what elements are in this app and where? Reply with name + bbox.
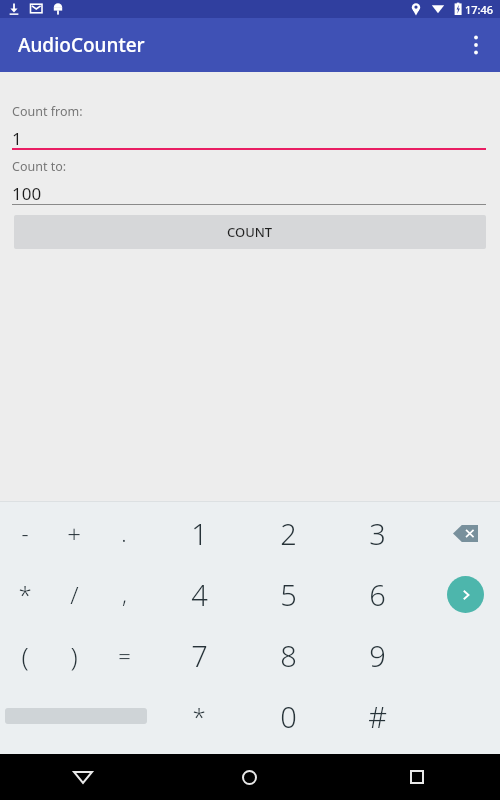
button[interactable]: =: [102, 631, 146, 679]
staticText: 2: [280, 514, 297, 553]
button[interactable]: 6: [355, 570, 399, 618]
button[interactable]: *: [3, 570, 47, 618]
staticText: 7: [191, 636, 208, 675]
staticText: (: [21, 638, 29, 673]
button[interactable]: 9: [355, 631, 399, 679]
staticText: 8: [280, 636, 297, 675]
staticText: .: [121, 518, 127, 548]
button[interactable]: 1: [177, 509, 221, 557]
button[interactable]: 7: [177, 631, 221, 679]
button[interactable]: Recents: [333, 754, 500, 800]
button[interactable]: 0: [266, 692, 310, 740]
staticText: AudioCounter: [18, 32, 145, 58]
staticText: 9: [369, 636, 386, 675]
staticText: 0: [280, 697, 297, 736]
button[interactable]: +: [52, 509, 96, 557]
staticText: *: [18, 578, 32, 611]
staticText: -: [21, 518, 29, 548]
staticText: 5: [280, 575, 297, 614]
staticText: #: [368, 697, 387, 736]
button[interactable]: More options: [452, 21, 500, 69]
staticText: 6: [369, 575, 386, 614]
button[interactable]: 4: [177, 570, 221, 618]
button[interactable]: *: [177, 692, 221, 740]
button[interactable]: Back: [0, 754, 166, 800]
button[interactable]: Home: [166, 754, 333, 800]
staticText: Count from:: [12, 103, 83, 120]
button[interactable]: 3: [355, 509, 399, 557]
button[interactable]: (: [3, 631, 47, 679]
staticText: ): [70, 638, 78, 673]
staticText: 3: [369, 514, 386, 553]
staticText: 4: [191, 575, 208, 614]
staticText: ,: [122, 579, 127, 609]
staticText: 17:46: [465, 2, 494, 17]
button[interactable]: #: [355, 692, 399, 740]
staticText: 1: [191, 514, 208, 553]
button[interactable]: ): [52, 631, 96, 679]
staticText: COUNT: [227, 223, 273, 241]
button[interactable]: 100: [12, 181, 486, 205]
button[interactable]: ,: [102, 570, 146, 618]
button[interactable]: 5: [266, 570, 310, 618]
button[interactable]: 2: [266, 509, 310, 557]
staticText: +: [67, 517, 81, 550]
staticText: 1: [12, 127, 22, 150]
staticText: 100: [12, 182, 42, 205]
button[interactable]: 1: [12, 126, 486, 150]
button[interactable]: -: [3, 509, 47, 557]
staticText: Count to:: [12, 158, 67, 175]
staticText: =: [118, 640, 131, 670]
staticText: *: [192, 700, 206, 733]
button[interactable]: /: [52, 570, 96, 618]
button[interactable]: COUNT: [14, 215, 486, 249]
staticText: /: [70, 578, 79, 611]
button[interactable]: Backspace: [441, 509, 489, 557]
button[interactable]: Enter: [441, 570, 489, 618]
button[interactable]: .: [102, 509, 146, 557]
button[interactable]: 8: [266, 631, 310, 679]
